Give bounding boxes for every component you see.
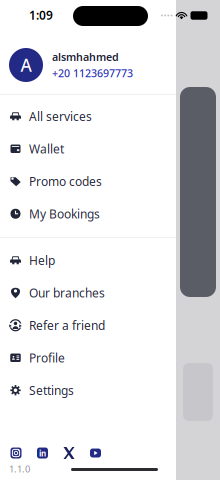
staticText: 1:09 [29, 7, 53, 23]
button[interactable]: Our branches [0, 276, 176, 309]
staticText: Settings [29, 382, 74, 398]
staticText: All services [29, 108, 92, 124]
staticText: My Bookings [29, 206, 100, 222]
staticText: +20 1123697773 [52, 66, 133, 80]
button[interactable]: Promo codes [0, 165, 176, 197]
staticText: Our branches [29, 285, 105, 301]
staticText: 1.1.0 [9, 463, 30, 475]
staticText: Profile [29, 350, 65, 366]
button[interactable]: Settings [0, 374, 176, 406]
button[interactable]: Instagram [10, 447, 22, 459]
button[interactable]: Refer a friend [0, 309, 176, 341]
staticText: in [39, 448, 46, 459]
button[interactable]: My Bookings [0, 197, 176, 230]
button[interactable]: X [63, 447, 75, 459]
staticText: Promo codes [29, 173, 102, 189]
button[interactable]: Wallet [0, 132, 176, 165]
staticText: alsmhahmed [52, 50, 119, 64]
button[interactable]: YouTube [89, 447, 101, 459]
staticText: Refer a friend [29, 317, 105, 333]
button[interactable]: Profile [0, 341, 176, 374]
staticText: Wallet [29, 141, 64, 157]
staticText: Help [29, 252, 55, 268]
button[interactable]: All services [0, 100, 176, 132]
staticText: A [20, 53, 31, 76]
button[interactable]: Help [0, 244, 176, 276]
button[interactable]: LinkedIn [36, 447, 48, 459]
